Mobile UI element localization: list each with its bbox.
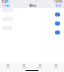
button[interactable]: Yes: [55, 12, 60, 16]
staticText: Chats: [2, 4, 9, 7]
staticText: Info: [55, 4, 61, 7]
button[interactable]: Got it: [55, 30, 60, 34]
button[interactable]: Chats: [2, 4, 10, 7]
button[interactable]: Alex: [29, 4, 36, 7]
staticText: 100%: [54, 0, 62, 3]
button[interactable]: Info: [55, 4, 62, 7]
button[interactable]: Settings: [48, 62, 64, 70]
button[interactable]: Chats: [0, 62, 16, 70]
button[interactable]: Calls: [16, 62, 32, 70]
button[interactable]: Contacts: [32, 62, 48, 70]
staticText: Alex: [29, 4, 35, 7]
staticText: 9:41: [2, 0, 9, 3]
button[interactable]: Sure: [55, 21, 60, 25]
